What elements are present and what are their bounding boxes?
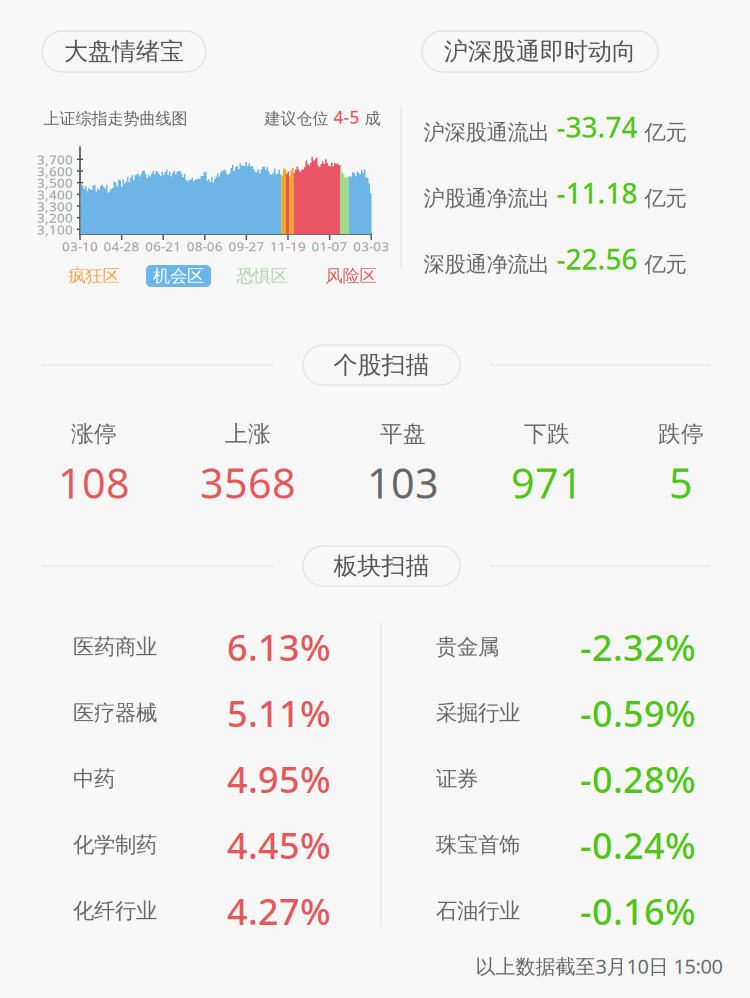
button[interactable]: 疯狂区 xyxy=(61,265,126,287)
staticText: 化纤行业 xyxy=(73,898,157,924)
staticText: 疯狂区 xyxy=(68,265,119,287)
staticText: 4.27% xyxy=(227,887,331,935)
staticText: 采掘行业 xyxy=(436,700,520,726)
staticText: 板块扫描 xyxy=(333,551,429,581)
staticText: 证券 xyxy=(436,766,478,792)
staticText: -11.18 xyxy=(556,174,637,212)
staticText: 珠宝首饰 xyxy=(436,832,520,858)
staticText: 平盘 xyxy=(380,420,426,448)
staticText: 11-19 xyxy=(270,237,306,255)
staticText: 108 xyxy=(58,455,130,510)
staticText: 沪深股通即时动向 xyxy=(444,37,636,66)
staticText: -22.56 xyxy=(556,240,637,278)
staticText: 建议仓位 xyxy=(264,109,328,129)
button[interactable]: 恐惧区 xyxy=(229,265,294,287)
staticText: 06-21 xyxy=(145,237,181,255)
staticText: 103 xyxy=(367,455,439,510)
staticText: 沪深股通流出 xyxy=(423,119,549,146)
staticText: 上涨 xyxy=(225,420,271,448)
staticText: 贵金属 xyxy=(436,634,499,660)
staticText: 3,300 xyxy=(37,197,73,215)
staticText: 03-10 xyxy=(62,237,98,255)
staticText: 3,700 xyxy=(37,150,73,168)
staticText: 沪股通净流出 xyxy=(423,185,549,212)
staticText: -0.24% xyxy=(580,821,696,869)
staticText: 机会区 xyxy=(153,265,204,287)
staticText: 3,600 xyxy=(37,162,73,180)
staticText: 中药 xyxy=(73,766,115,792)
button[interactable]: 机会区 xyxy=(146,265,211,287)
staticText: 04-28 xyxy=(104,237,140,255)
staticText: 跌停 xyxy=(658,420,704,448)
staticText: -0.59% xyxy=(580,689,696,737)
staticText: 4.95% xyxy=(227,755,331,803)
staticText: 4.45% xyxy=(227,821,331,869)
staticText: -0.16% xyxy=(580,887,696,935)
staticText: 5.11% xyxy=(227,689,331,737)
staticText: 大盘情绪宝 xyxy=(64,37,184,66)
staticText: 3,100 xyxy=(37,220,73,238)
staticText: 3568 xyxy=(200,455,296,510)
staticText: 石油行业 xyxy=(436,898,520,924)
staticText: 3,500 xyxy=(37,174,73,191)
staticText: 03-03 xyxy=(353,237,389,255)
staticText: 亿元 xyxy=(644,185,686,212)
staticText: 09-27 xyxy=(228,237,264,255)
staticText: 6.13% xyxy=(227,623,331,671)
staticText: 01-07 xyxy=(312,237,348,255)
staticText: 成 xyxy=(364,109,380,129)
staticText: 3,400 xyxy=(37,185,73,203)
staticText: -0.28% xyxy=(580,755,696,803)
staticText: 化学制药 xyxy=(73,832,157,858)
staticText: 深股通净流出 xyxy=(423,251,549,278)
staticText: 风险区 xyxy=(325,265,376,287)
staticText: 医疗器械 xyxy=(73,700,157,726)
staticText: 恐惧区 xyxy=(236,265,287,287)
staticText: 971 xyxy=(511,455,583,510)
staticText: 4-5 xyxy=(328,105,364,128)
staticText: 医药商业 xyxy=(73,634,157,660)
button[interactable]: 风险区 xyxy=(318,265,383,287)
staticText: -2.32% xyxy=(580,623,696,671)
staticText: 上证综指走势曲线图 xyxy=(43,109,187,129)
staticText: 以上数据截至3月10日 15:00 xyxy=(475,953,722,979)
staticText: 亿元 xyxy=(644,251,686,278)
staticText: 5 xyxy=(669,455,693,510)
staticText: 08-06 xyxy=(187,237,223,255)
staticText: 亿元 xyxy=(644,119,686,146)
staticText: 个股扫描 xyxy=(333,350,429,380)
staticText: 下跌 xyxy=(524,420,570,448)
staticText: 3,200 xyxy=(37,209,73,226)
staticText: 涨停 xyxy=(71,420,117,448)
staticText: -33.74 xyxy=(556,108,637,146)
